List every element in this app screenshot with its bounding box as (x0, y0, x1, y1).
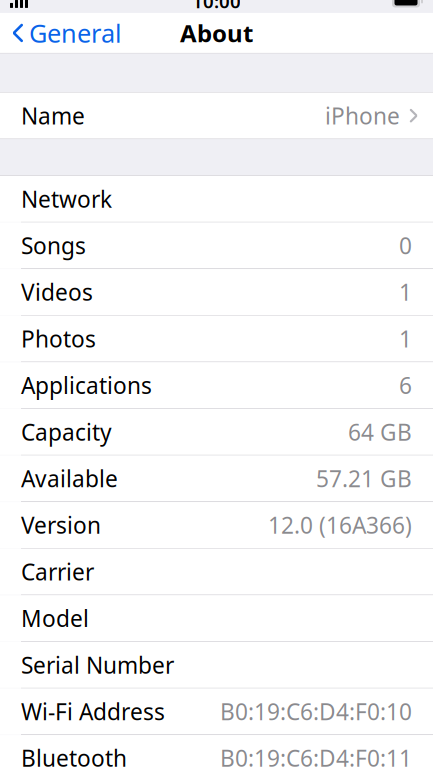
button[interactable]: Available (0, 455, 433, 501)
staticText: Network (21, 184, 112, 214)
button[interactable]: Carrier (0, 549, 433, 595)
staticText: Version (21, 510, 101, 540)
staticText: 12.0 (16A366) (268, 510, 412, 540)
button[interactable]: Wi-Fi Address (0, 688, 433, 734)
staticText: Videos (21, 277, 93, 307)
staticText: 6 (399, 370, 412, 400)
button[interactable]: Network (0, 176, 433, 222)
button[interactable]: Videos (0, 269, 433, 315)
staticText: Applications (21, 370, 152, 400)
staticText: Bluetooth (21, 743, 127, 770)
button[interactable]: Serial Number (0, 642, 433, 688)
button[interactable]: Songs (0, 222, 433, 268)
staticText: Songs (21, 230, 86, 260)
button[interactable]: Name (0, 93, 433, 139)
staticText: Photos (21, 324, 96, 354)
staticText: 64 GB (348, 417, 412, 447)
staticText: Serial Number (21, 650, 174, 680)
staticText: Model (21, 603, 89, 633)
staticText: Available (21, 463, 118, 493)
button[interactable]: Model (0, 595, 433, 641)
staticText: B0:19:C6:D4:F0:11 (220, 743, 412, 770)
staticText: Name (21, 101, 85, 131)
staticText: iPhone (325, 101, 400, 131)
staticText: 1 (399, 324, 412, 354)
button[interactable]: General (0, 10, 122, 56)
button[interactable]: Applications (0, 362, 433, 408)
staticText: Wi-Fi Address (21, 696, 165, 726)
staticText: Carrier (21, 557, 94, 587)
staticText: General (29, 16, 122, 50)
button[interactable]: Photos (0, 316, 433, 362)
staticText: 57.21 GB (316, 463, 412, 493)
button[interactable]: Bluetooth (0, 735, 433, 770)
staticText: B0:19:C6:D4:F0:10 (220, 696, 412, 726)
staticText: About (180, 17, 253, 49)
staticText: Capacity (21, 417, 112, 447)
staticText: 10:00 (192, 0, 241, 13)
staticText: 1 (399, 277, 412, 307)
button[interactable]: Version (0, 502, 433, 548)
staticText: 0 (399, 230, 412, 260)
button[interactable]: Capacity (0, 409, 433, 455)
